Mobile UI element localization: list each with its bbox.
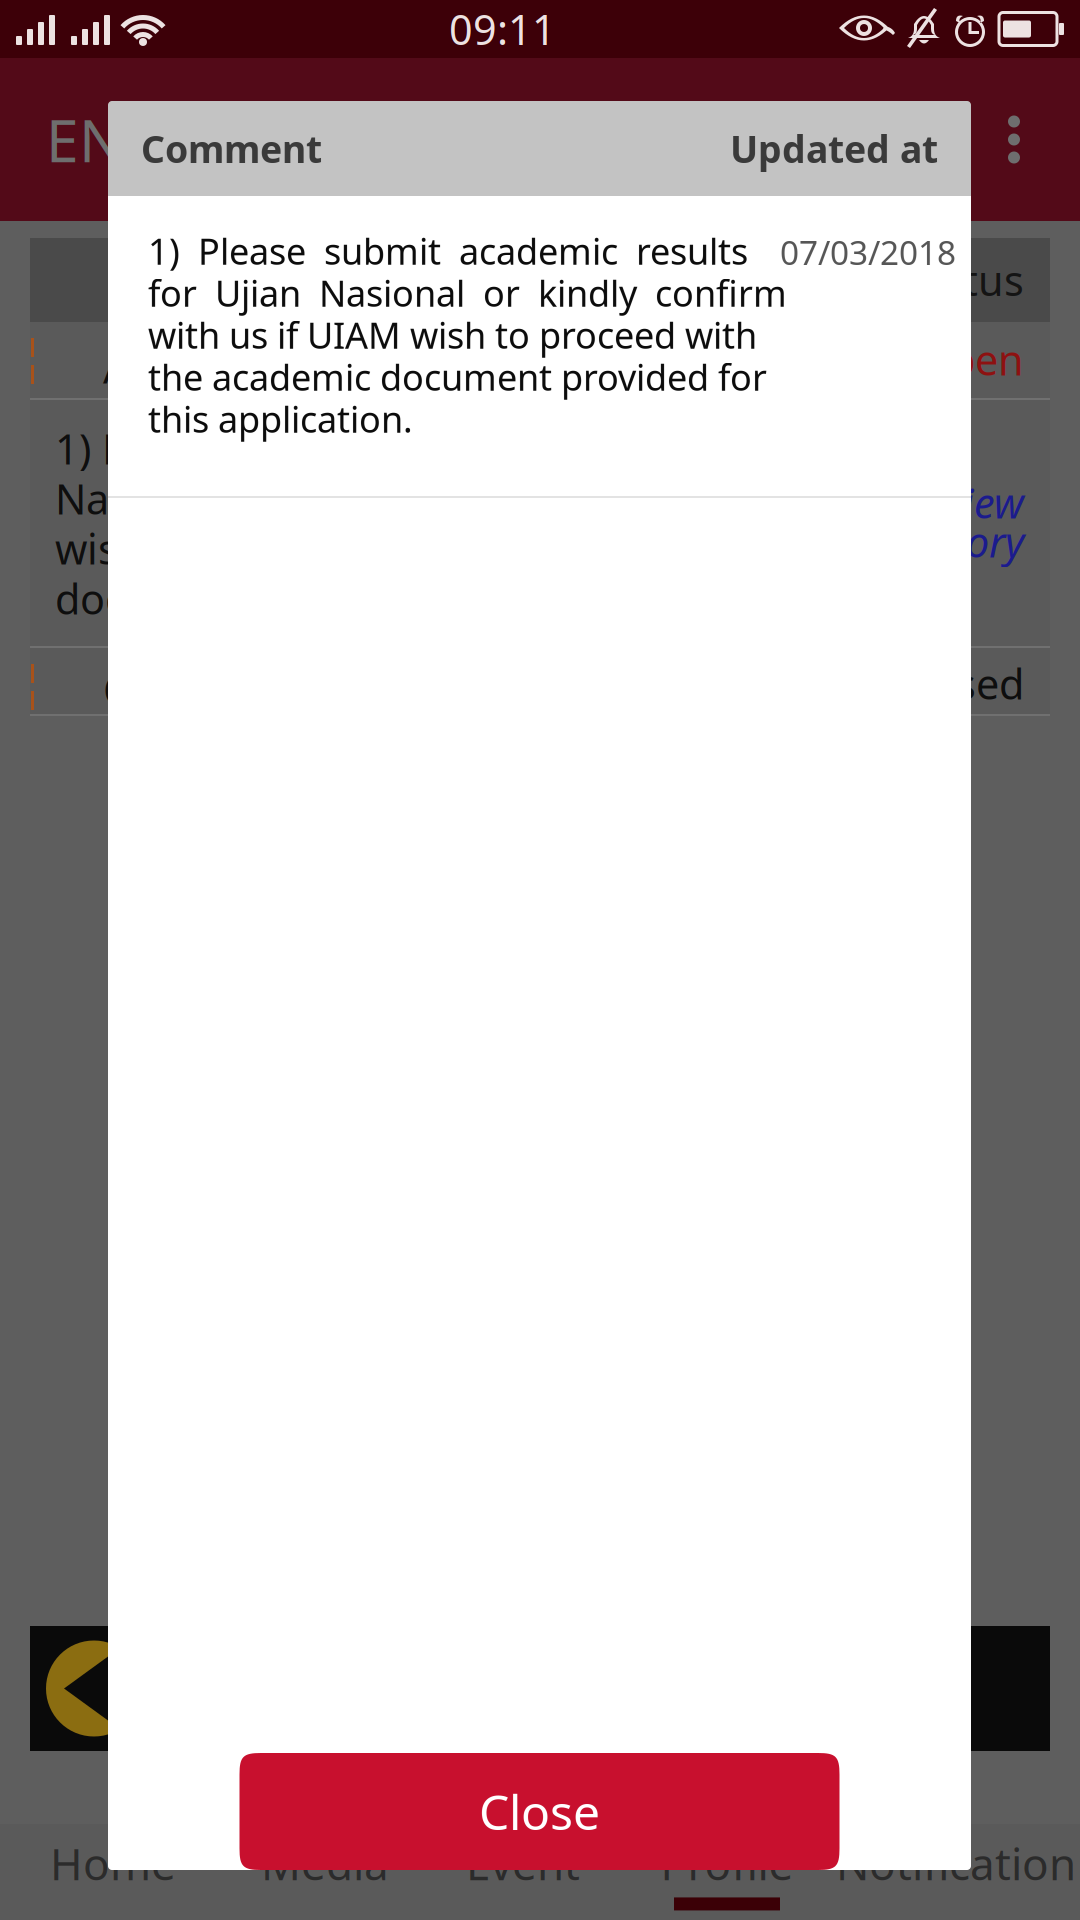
- button[interactable]: More options: [966, 79, 1062, 199]
- staticText: Close: [479, 1780, 600, 1843]
- staticText: Media: [261, 1834, 389, 1892]
- staticText: this application.: [148, 395, 413, 443]
- staticText: Event: [466, 1834, 580, 1892]
- button[interactable]: Home: [0, 1824, 226, 1920]
- staticText: 09:11: [449, 2, 556, 56]
- staticText: 1) Please submit academic results: [148, 227, 748, 275]
- staticText: for Ujian Nasional or kindly confirm: [148, 269, 787, 317]
- staticText: Profile: [660, 1834, 793, 1892]
- staticText: Application: [103, 340, 321, 395]
- staticText: the academic document provided for: [148, 353, 767, 401]
- staticText: View: [940, 475, 1024, 530]
- button[interactable]: Profile: [622, 1824, 832, 1920]
- button[interactable]: Back: [30, 1640, 142, 1736]
- staticText: Home: [50, 1834, 176, 1892]
- staticText: 07/03/2018: [780, 230, 956, 274]
- staticText: ENQUIRY: [46, 100, 302, 178]
- staticText: Notification: [836, 1834, 1076, 1892]
- staticText: Status: [902, 253, 1024, 307]
- staticText: 1) Please submit academic results for Uj…: [55, 421, 890, 476]
- staticText: Open: [918, 332, 1024, 387]
- staticText: History: [895, 514, 1024, 569]
- staticText: Offer: [103, 662, 203, 717]
- button[interactable]: Close: [239, 1753, 839, 1870]
- staticText: wish to proceed with the academic: [55, 521, 728, 576]
- staticText: Updated at: [730, 124, 938, 173]
- staticText: Comment: [141, 124, 322, 173]
- button[interactable]: Event: [424, 1824, 622, 1920]
- staticText: Description: [128, 253, 351, 307]
- button[interactable]: Media: [226, 1824, 424, 1920]
- staticText: with us if UIAM wish to proceed with: [148, 311, 757, 359]
- staticText: Nasional or kindly confirm with us if UI…: [55, 471, 874, 526]
- button[interactable]: Notification: [832, 1824, 1080, 1920]
- staticText: Closed: [894, 656, 1024, 711]
- staticText: document provided for this application.: [55, 571, 822, 626]
